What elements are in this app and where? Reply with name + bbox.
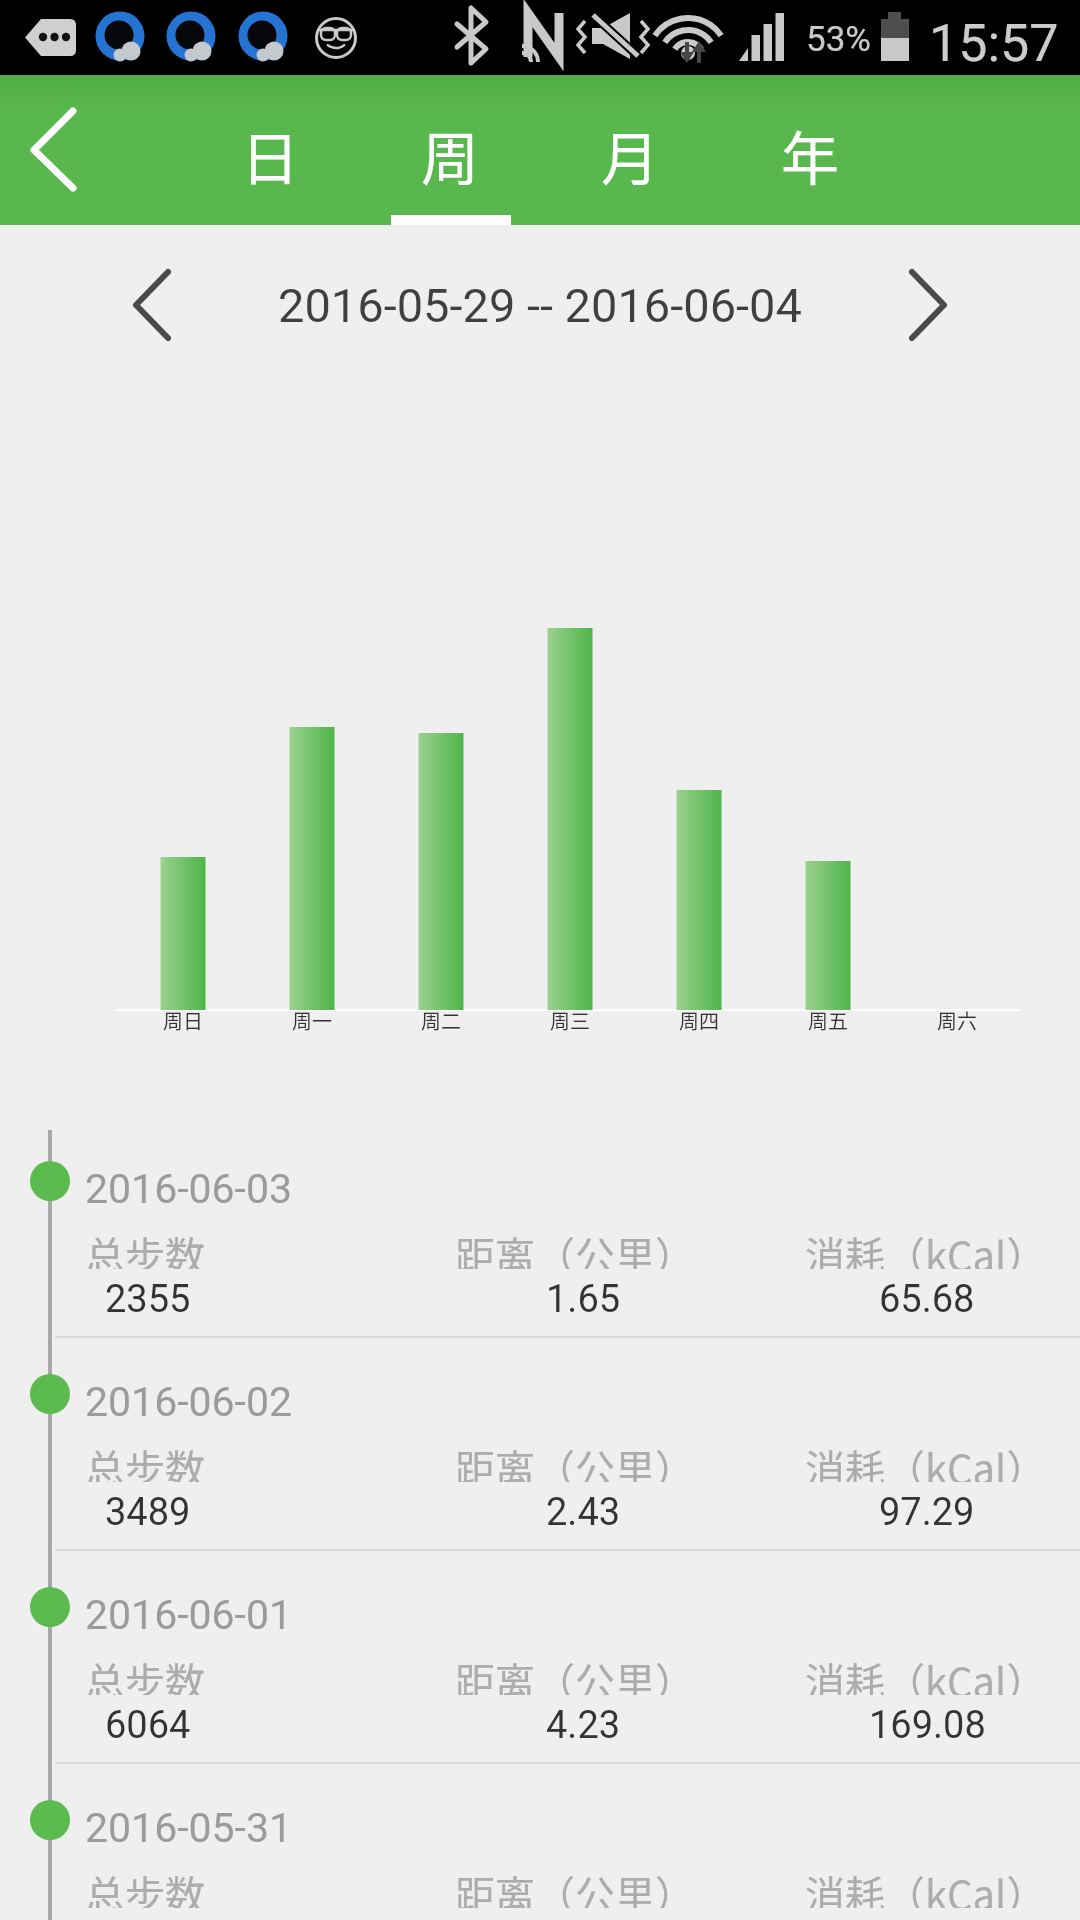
staticText: 距离（公里） [455,1438,695,1482]
staticText: 65.68 [879,1277,975,1321]
button[interactable]: 2016-06-02 [0,1338,1080,1551]
staticText: 距离（公里） [455,1864,695,1908]
button[interactable] [876,272,980,352]
staticText: 周二 [421,1006,461,1035]
button[interactable]: 周 [360,80,540,230]
staticText: 年 [781,113,840,197]
staticText: 2016-06-03 [85,1165,293,1213]
staticText: 周 [421,113,480,197]
staticText: 53% [806,19,871,60]
button[interactable]: 日 [180,80,360,230]
staticText: 总步数 [85,1651,205,1695]
staticText: 周四 [679,1006,719,1035]
staticText: 周五 [808,1006,848,1035]
staticText: 2016-05-31 [85,1804,293,1852]
staticText: 月 [601,113,660,197]
staticText: 消耗（kCal） [805,1864,1047,1908]
button[interactable]: 2016-06-03 [0,1125,1080,1338]
staticText: 周六 [937,1006,977,1035]
staticText: 距离（公里） [455,1225,695,1269]
staticText: 2016-06-02 [85,1378,293,1426]
staticText: 周日 [163,1006,203,1035]
button[interactable]: 2016-05-31 [0,1764,1080,1920]
staticText: 距离（公里） [455,1651,695,1695]
staticText: 2016-05-29 -- 2016-06-04 [278,278,802,333]
staticText: 169.08 [869,1703,986,1747]
staticText: 总步数 [85,1225,205,1269]
staticText: 周一 [292,1006,332,1035]
staticText: 2016-06-01 [85,1591,293,1639]
button[interactable]: 月 [540,80,720,230]
staticText: 2355 [105,1277,191,1321]
button[interactable] [100,272,204,352]
button[interactable] [0,75,110,225]
staticText: 消耗（kCal） [805,1438,1047,1482]
staticText: 消耗（kCal） [805,1651,1047,1695]
staticText: 总步数 [85,1864,205,1908]
staticText: 97.29 [879,1490,975,1534]
staticText: 1.65 [546,1277,621,1321]
staticText: 2.43 [546,1490,621,1534]
button[interactable]: 年 [720,80,900,230]
staticText: 总步数 [85,1438,205,1482]
staticText: 15:57 [929,13,1059,74]
staticText: 日 [241,113,300,197]
staticText: 6064 [105,1703,191,1747]
staticText: 周三 [550,1006,590,1035]
button[interactable]: 2016-06-01 [0,1551,1080,1764]
staticText: 消耗（kCal） [805,1225,1047,1269]
staticText: 3489 [105,1490,191,1534]
staticText: 4.23 [546,1703,621,1747]
